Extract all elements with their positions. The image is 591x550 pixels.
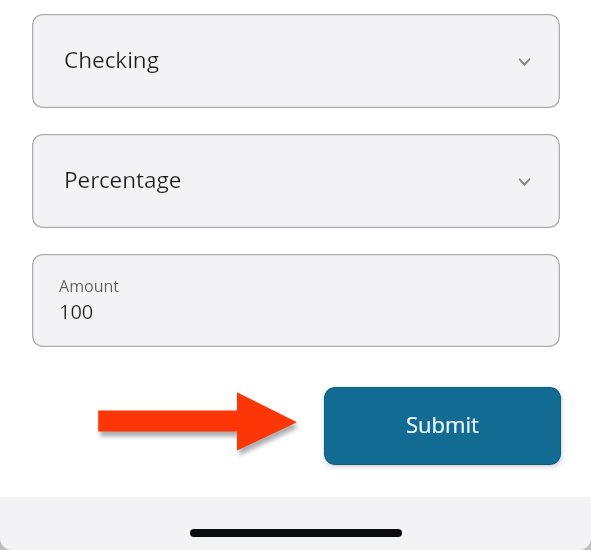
staticText: Checking (64, 44, 159, 75)
staticText: 100 (59, 298, 94, 325)
staticText: Submit (406, 409, 479, 439)
other: Expand Checking (515, 52, 533, 70)
button[interactable]: Submit (324, 387, 561, 465)
button[interactable]: Percentage (32, 134, 560, 228)
staticText: Amount (59, 275, 119, 297)
other: Expand Percentage (515, 172, 533, 190)
button[interactable]: Checking (32, 14, 560, 108)
staticText: Percentage (64, 164, 182, 195)
button[interactable]: Amount (32, 254, 560, 347)
